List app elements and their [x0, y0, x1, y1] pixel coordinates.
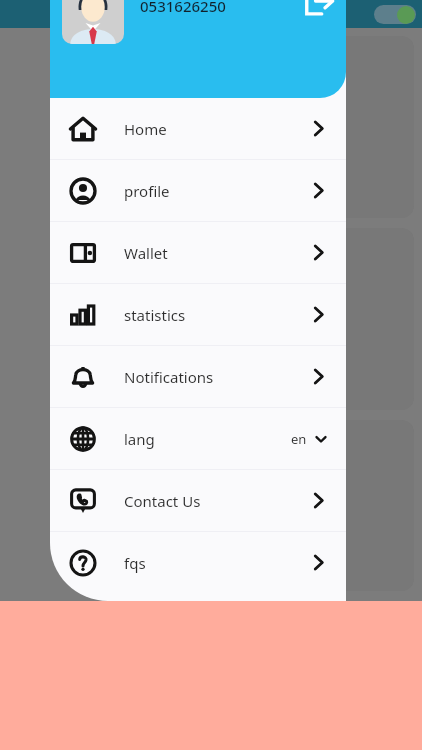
button[interactable]: 1 week ago [230, 420, 414, 591]
staticText: 0531626250 [140, 0, 226, 16]
staticText: Notifications [124, 367, 214, 387]
staticText: profile [124, 181, 170, 201]
staticText: 1 week ago [240, 434, 310, 452]
button[interactable]: fqs [50, 532, 346, 593]
button[interactable]: Home [50, 98, 346, 159]
staticText: fqs [124, 553, 146, 573]
button[interactable]: profile [50, 160, 346, 221]
button[interactable]: 1 week ago [230, 36, 414, 218]
staticText: Home [124, 119, 167, 139]
staticText: lang [124, 429, 155, 449]
button[interactable]: lang [50, 408, 346, 469]
button[interactable]: Contact Us [50, 470, 346, 531]
button[interactable]: Logout [302, 0, 336, 18]
staticText: Contact Us [124, 491, 201, 511]
button[interactable]: 1 week ago [230, 228, 414, 410]
button[interactable]: statistics [50, 284, 346, 345]
staticText: Wallet [124, 243, 168, 263]
staticText: en [291, 430, 307, 448]
button[interactable]: Profile photo [62, 0, 124, 44]
button[interactable]: Notifications [50, 346, 346, 407]
button[interactable]: Wallet [50, 222, 346, 283]
button[interactable]: Toggle [374, 5, 416, 24]
staticText: statistics [124, 305, 186, 325]
